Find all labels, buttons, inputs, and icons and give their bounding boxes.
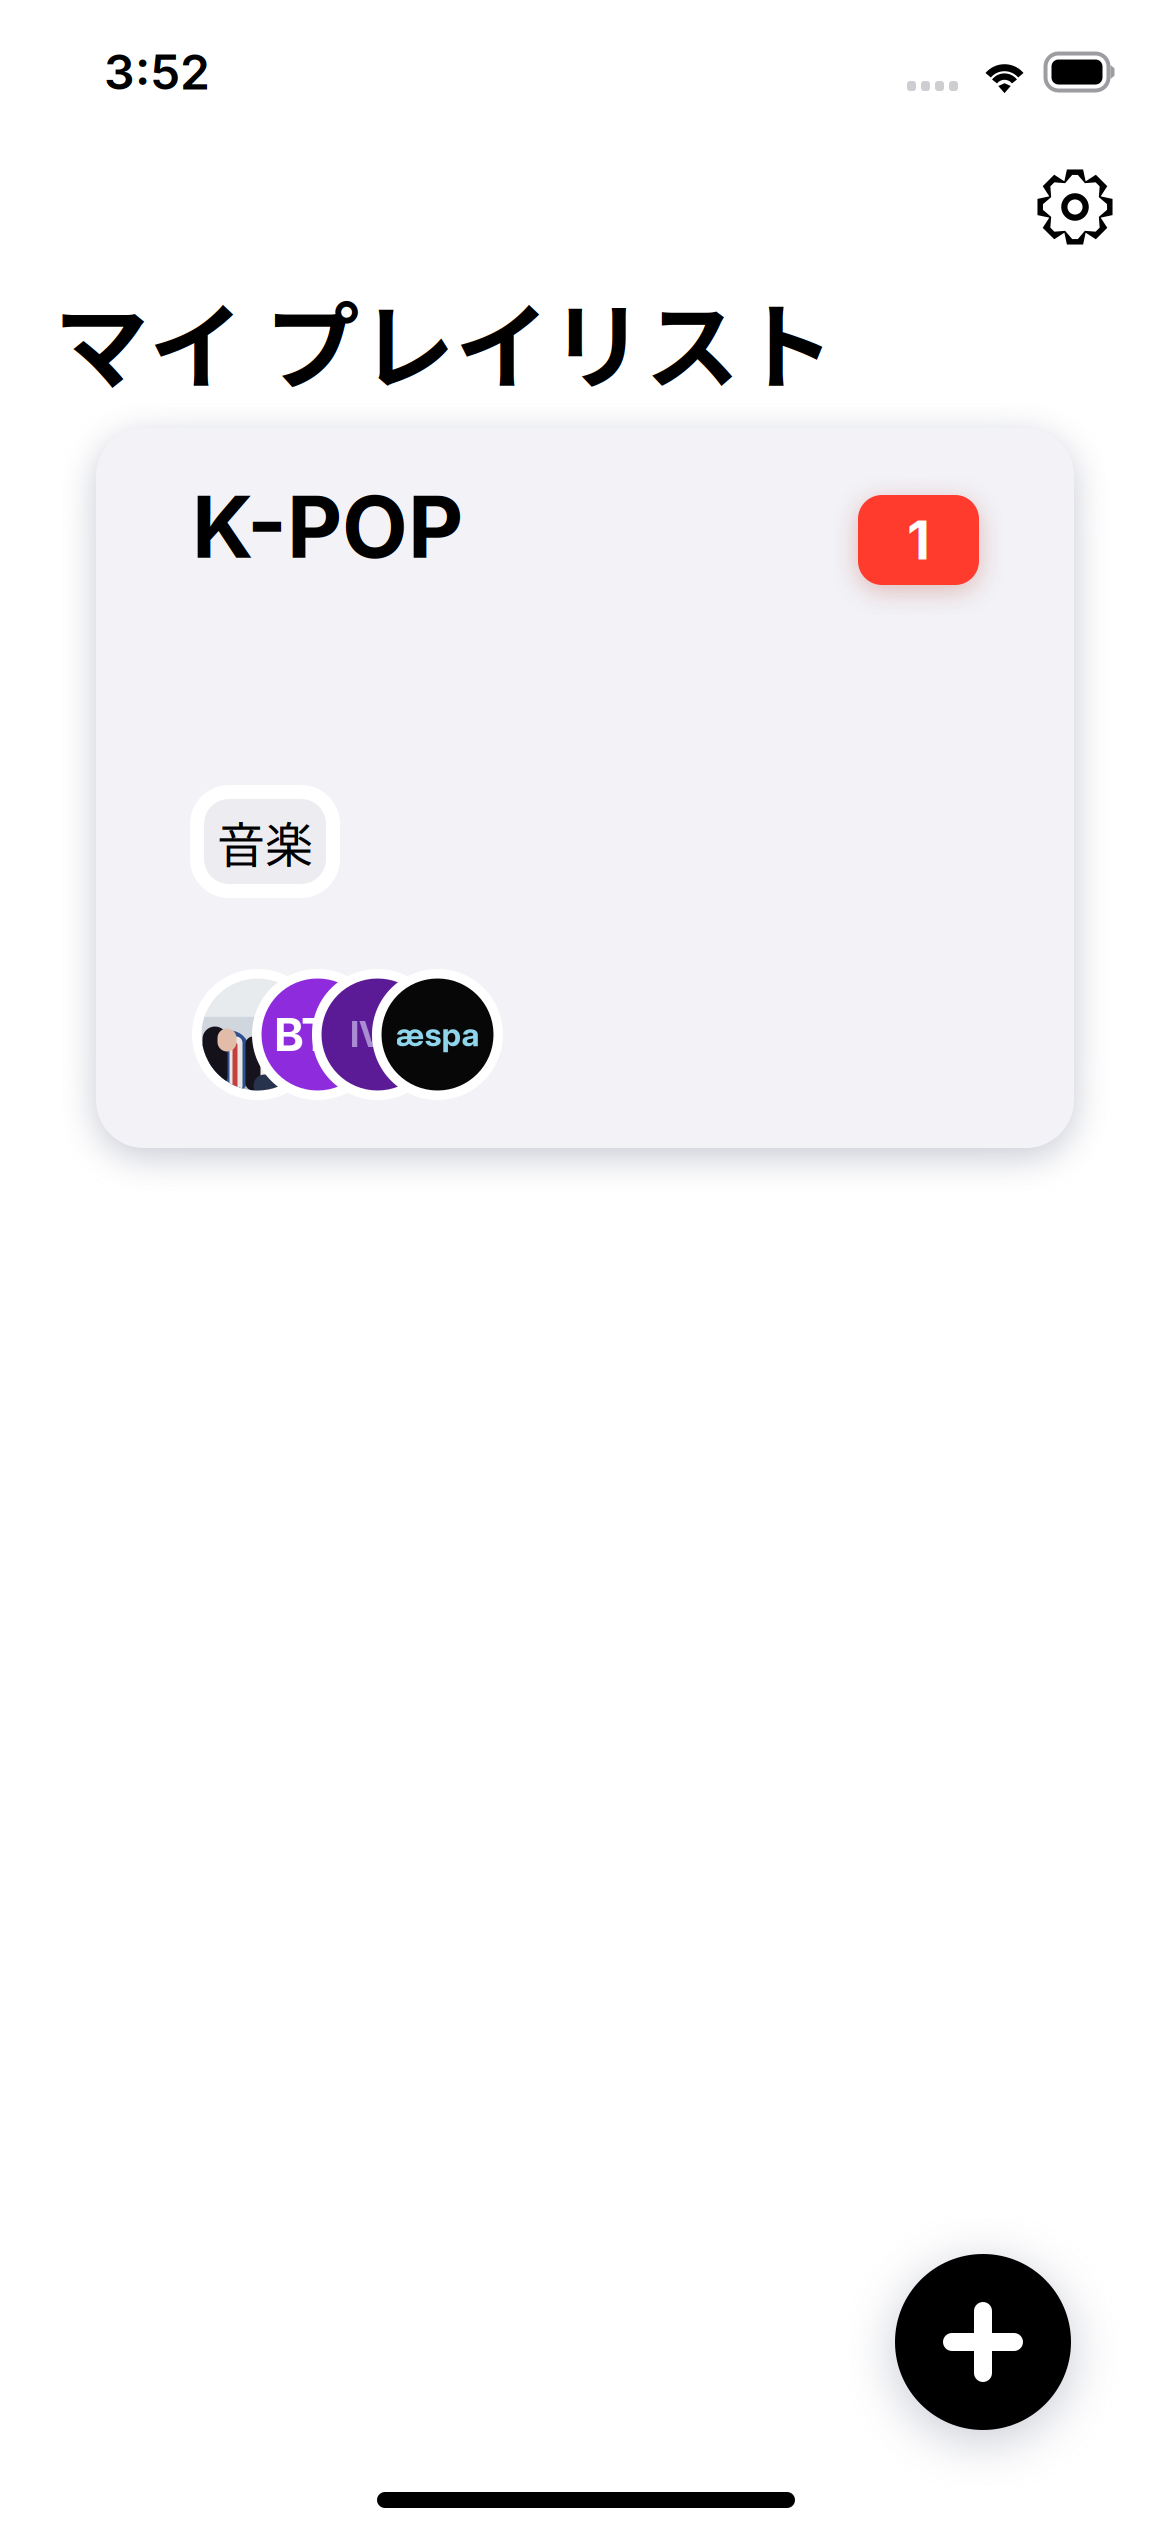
staticText: K-POP (192, 475, 463, 578)
staticText: 1 (907, 508, 930, 572)
staticText: 3:52 (104, 43, 210, 101)
button[interactable]: Add playlist (895, 2254, 1071, 2430)
staticText: マイ プレイリスト (54, 272, 835, 409)
staticText: BTS (274, 1007, 361, 1062)
staticText: 音楽 (217, 807, 313, 876)
button[interactable]: Settings (1021, 153, 1129, 261)
staticText: IVE (350, 1013, 405, 1055)
staticText: æspa (395, 1015, 479, 1054)
button[interactable]: K-POP (96, 428, 1074, 1148)
